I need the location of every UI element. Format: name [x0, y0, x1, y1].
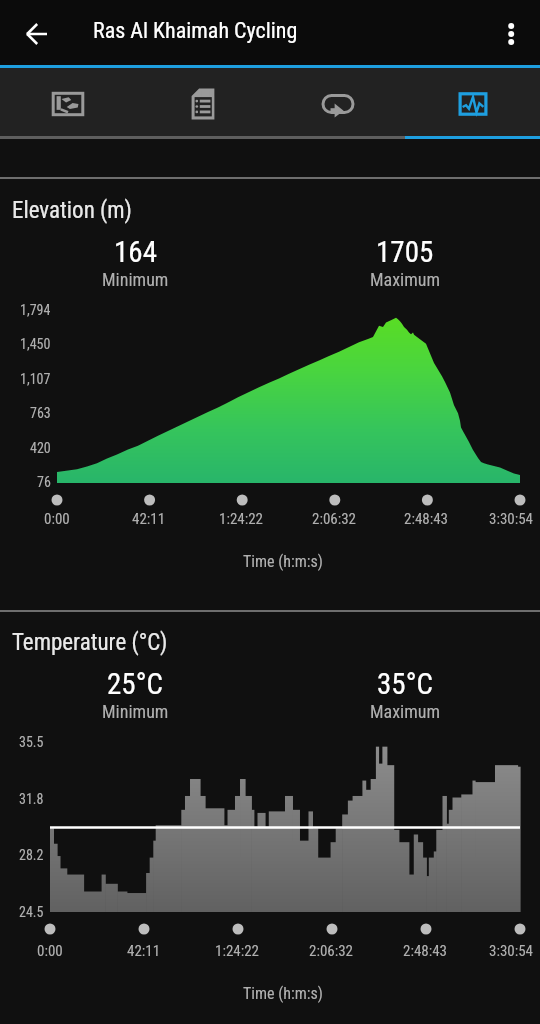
staticText: 2:06:32 — [309, 942, 354, 960]
staticText: Minimum — [102, 269, 169, 290]
staticText: 2:48:43 — [403, 942, 448, 960]
staticText: 1,794 — [20, 302, 51, 318]
button[interactable]: Laps — [270, 68, 405, 136]
staticText: 2:06:32 — [312, 510, 357, 528]
button[interactable]: More options — [487, 10, 535, 58]
button[interactable]: Map — [0, 68, 135, 136]
staticText: 35°C — [377, 667, 433, 701]
staticText: 1,450 — [20, 336, 51, 352]
staticText: 0:00 — [44, 510, 70, 528]
staticText: 164 — [114, 235, 157, 269]
staticText: 76 — [37, 474, 51, 490]
staticText: Elevation (m) — [12, 197, 132, 224]
staticText: 1,107 — [20, 371, 51, 387]
staticText: 1705 — [376, 235, 434, 269]
staticText: 763 — [30, 405, 51, 421]
staticText: Maximum — [370, 269, 441, 290]
staticText: 35.5 — [19, 734, 44, 750]
staticText: 28.2 — [19, 847, 44, 863]
button[interactable]: Details — [135, 68, 270, 136]
staticText: 24.5 — [19, 904, 44, 920]
staticText: 2:48:43 — [404, 510, 449, 528]
staticText: 25°C — [107, 667, 163, 701]
staticText: 3:30:54 — [489, 510, 534, 528]
staticText: 1:24:22 — [215, 942, 260, 960]
staticText: Time (h:m:s) — [243, 552, 323, 571]
staticText: 42:11 — [127, 942, 161, 960]
staticText: Time (h:m:s) — [243, 984, 323, 1003]
staticText: Temperature (°C) — [12, 629, 168, 656]
staticText: Maximum — [370, 701, 441, 722]
staticText: 0:00 — [37, 942, 63, 960]
button[interactable]: Navigate up — [13, 10, 61, 58]
staticText: 31.8 — [19, 791, 44, 807]
staticText: Minimum — [102, 701, 169, 722]
staticText: 3:30:54 — [489, 942, 534, 960]
staticText: 420 — [30, 440, 51, 456]
staticText: 42:11 — [132, 510, 166, 528]
button[interactable]: Charts — [405, 68, 540, 136]
staticText: 1:24:22 — [219, 510, 264, 528]
staticText: Ras Al Khaimah Cycling — [93, 18, 298, 44]
